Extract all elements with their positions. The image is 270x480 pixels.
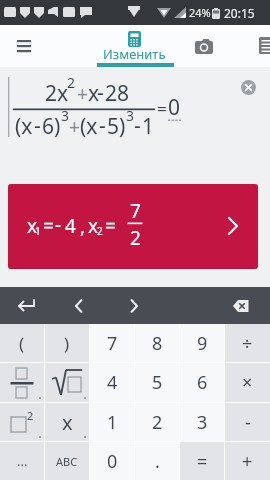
staticText: ... xyxy=(17,452,28,470)
staticText: Изменить xyxy=(103,45,166,63)
staticText: 2 xyxy=(97,224,103,238)
staticText: 7 xyxy=(107,331,118,356)
button[interactable]: 0 xyxy=(90,442,134,480)
staticText: 7 xyxy=(130,198,141,224)
staticText: 5) xyxy=(107,112,126,141)
staticText: 6) xyxy=(42,112,61,141)
button[interactable] xyxy=(65,291,93,319)
staticText: 0 xyxy=(168,93,181,122)
button[interactable]: 7 xyxy=(90,324,134,362)
button[interactable] xyxy=(0,363,44,402)
staticText: 2 xyxy=(67,73,76,92)
button[interactable]: 6 xyxy=(180,363,224,402)
staticText: 9 xyxy=(197,331,208,356)
staticText: ABC xyxy=(56,454,78,469)
staticText: 1 xyxy=(142,112,155,141)
staticText: (x xyxy=(80,112,98,141)
staticText: + xyxy=(77,81,88,107)
staticText: 5 xyxy=(152,370,163,395)
staticText: ( xyxy=(19,332,25,355)
staticText: × xyxy=(242,370,253,395)
staticText: - xyxy=(97,78,104,107)
button[interactable]: . xyxy=(135,442,179,480)
staticText: (x xyxy=(15,112,33,141)
staticText: 2 xyxy=(130,225,141,251)
button[interactable] xyxy=(190,33,218,61)
staticText: , xyxy=(80,213,86,239)
staticText: + xyxy=(69,114,80,140)
button[interactable]: x xyxy=(8,184,258,269)
staticText: = xyxy=(197,449,208,474)
button[interactable] xyxy=(10,33,38,61)
staticText: x xyxy=(27,213,38,239)
staticText: 1 xyxy=(107,410,118,435)
button[interactable] xyxy=(241,80,256,95)
button[interactable]: Изменить xyxy=(97,25,174,67)
button[interactable]: ÷ xyxy=(225,324,270,362)
staticText: 24% xyxy=(189,5,211,20)
staticText: 6 xyxy=(197,370,208,395)
staticText: 20:15 xyxy=(224,5,255,21)
button[interactable]: - xyxy=(225,403,270,441)
staticText: x xyxy=(88,79,100,108)
staticText: 3 xyxy=(126,106,135,125)
button[interactable]: ) xyxy=(45,324,89,362)
button[interactable] xyxy=(13,291,41,319)
staticText: ) xyxy=(64,332,70,355)
button[interactable]: × xyxy=(225,363,270,402)
staticText: 1 xyxy=(35,224,41,238)
staticText: + xyxy=(242,449,253,474)
staticText: 28 xyxy=(105,79,130,108)
staticText: - xyxy=(99,111,106,140)
staticText: - xyxy=(134,111,141,140)
button[interactable]: 8 xyxy=(135,324,179,362)
staticText: - xyxy=(34,111,41,140)
staticText: x xyxy=(88,213,99,239)
button[interactable]: 4 xyxy=(90,363,134,402)
button[interactable] xyxy=(45,363,89,402)
button[interactable]: 1 xyxy=(90,403,134,441)
staticText: 4 xyxy=(65,213,76,239)
button[interactable]: 9 xyxy=(180,324,224,362)
button[interactable] xyxy=(226,291,254,319)
button[interactable]: ABC xyxy=(45,442,89,480)
button[interactable]: 2 xyxy=(135,403,179,441)
button[interactable] xyxy=(256,35,270,59)
button[interactable]: ( xyxy=(0,324,44,362)
staticText: 2 xyxy=(27,408,34,423)
staticText: 3 xyxy=(61,106,70,125)
staticText: x xyxy=(62,409,73,436)
staticText: 2 xyxy=(152,410,163,435)
button[interactable] xyxy=(120,291,148,319)
staticText: . xyxy=(155,449,160,474)
staticText: 8 xyxy=(152,331,163,356)
staticText: 3 xyxy=(197,410,208,435)
button[interactable]: x xyxy=(45,403,89,441)
button[interactable]: 3 xyxy=(180,403,224,441)
button[interactable]: 5 xyxy=(135,363,179,402)
button[interactable]: ... xyxy=(0,442,44,480)
button[interactable]: = xyxy=(180,442,224,480)
staticText: 2x xyxy=(45,79,69,108)
staticText: - xyxy=(245,410,251,435)
staticText: = xyxy=(105,213,116,239)
staticText: - xyxy=(55,212,62,238)
staticText: ÷ xyxy=(242,331,253,356)
button[interactable]: + xyxy=(225,442,270,480)
staticText: 0 xyxy=(107,449,118,474)
staticText: 4 xyxy=(107,370,118,395)
button[interactable]: 2 xyxy=(0,403,44,441)
staticText: = xyxy=(157,97,167,120)
staticText: = xyxy=(43,213,54,239)
